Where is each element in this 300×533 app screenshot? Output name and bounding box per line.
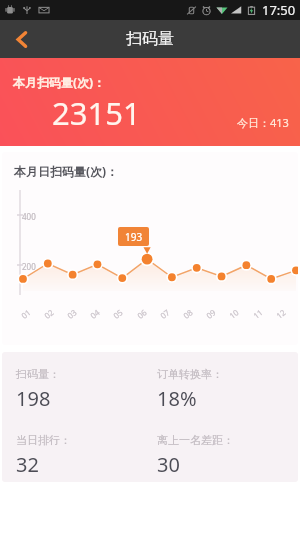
staticText: 09 (204, 306, 218, 321)
button[interactable]: 离上一名差距： (157, 433, 298, 478)
staticText: 本月日扫码量(次)： (14, 163, 119, 179)
button[interactable]: 扫码量： (16, 367, 157, 412)
staticText: 订单转换率： (157, 367, 223, 381)
staticText: 11 (251, 306, 265, 321)
staticText: 400 (22, 211, 36, 222)
staticText: 23151 (52, 92, 141, 134)
staticText: 08 (181, 306, 195, 321)
staticText: 离上一名差距： (157, 433, 234, 447)
button[interactable]: 订单转换率： (157, 367, 298, 412)
staticText: 17:50 (262, 1, 296, 19)
staticText: 05 (111, 306, 125, 321)
button[interactable]: 当日排行： (16, 433, 157, 478)
staticText: 06 (135, 306, 149, 321)
button[interactable]: Back (0, 20, 42, 58)
staticText: 30 (157, 451, 180, 478)
staticText: 07 (158, 306, 172, 321)
button[interactable]: 193 (118, 227, 149, 246)
staticText: 04 (88, 306, 102, 321)
staticText: 32 (16, 451, 39, 478)
staticText: 本月扫码量(次)： (13, 74, 106, 90)
staticText: 01 (19, 306, 33, 321)
staticText: 18% (157, 385, 197, 412)
staticText: 12 (274, 306, 288, 321)
staticText: 扫码量 (126, 29, 174, 49)
staticText: 10 (227, 306, 241, 321)
staticText: 193 (125, 230, 143, 244)
staticText: 今日：413 (237, 115, 289, 130)
staticText: 03 (65, 306, 79, 321)
staticText: 198 (16, 385, 51, 412)
staticText: 200 (22, 261, 36, 272)
staticText: 当日排行： (16, 433, 71, 447)
staticText: 扫码量： (16, 367, 60, 381)
staticText: 02 (42, 306, 56, 321)
